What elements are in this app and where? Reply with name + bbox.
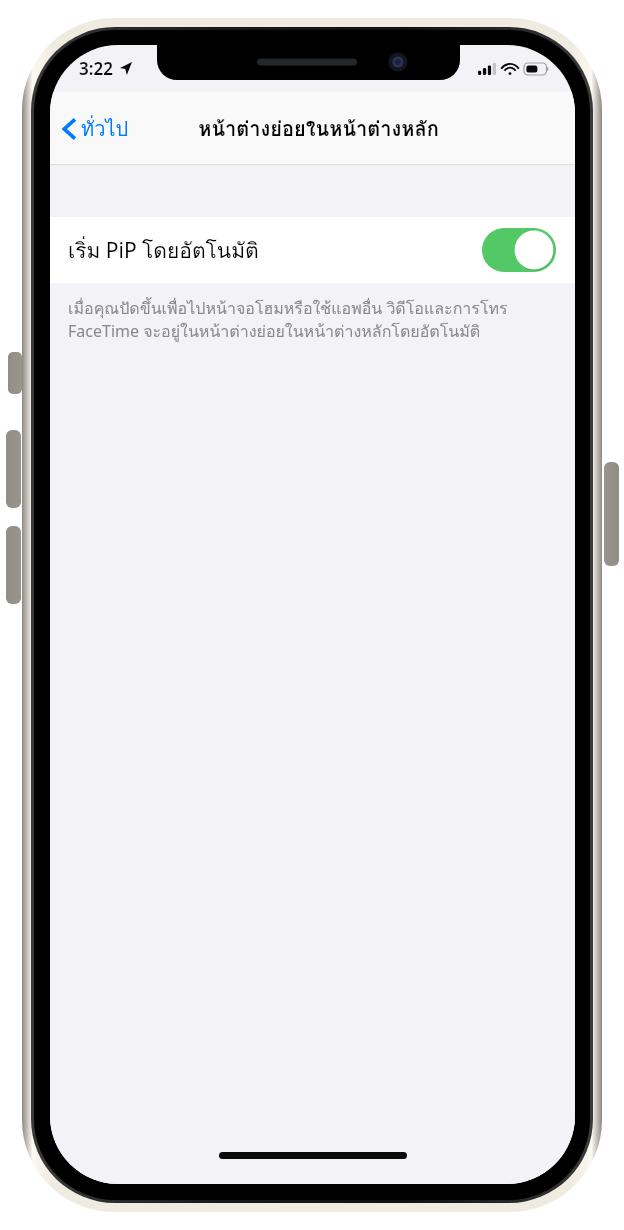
staticText: ทั่วไป [81, 113, 129, 145]
button[interactable]: เริ่ม PiP โดยอัตโนมัติ, เปิด [482, 228, 556, 272]
button[interactable]: ทั่วไป [59, 107, 133, 151]
staticText: เมื่อคุณปัดขึ้นเพื่อไปหน้าจอโฮมหรือใช้แอ… [68, 296, 559, 344]
staticText: หน้าต่างย่อยในหน้าต่างหลัก [198, 113, 439, 145]
button[interactable]: เริ่ม PiP โดยอัตโนมัติ [50, 217, 575, 283]
staticText: เริ่ม PiP โดยอัตโนมัติ [68, 234, 259, 267]
staticText: 3:22 [79, 57, 113, 80]
